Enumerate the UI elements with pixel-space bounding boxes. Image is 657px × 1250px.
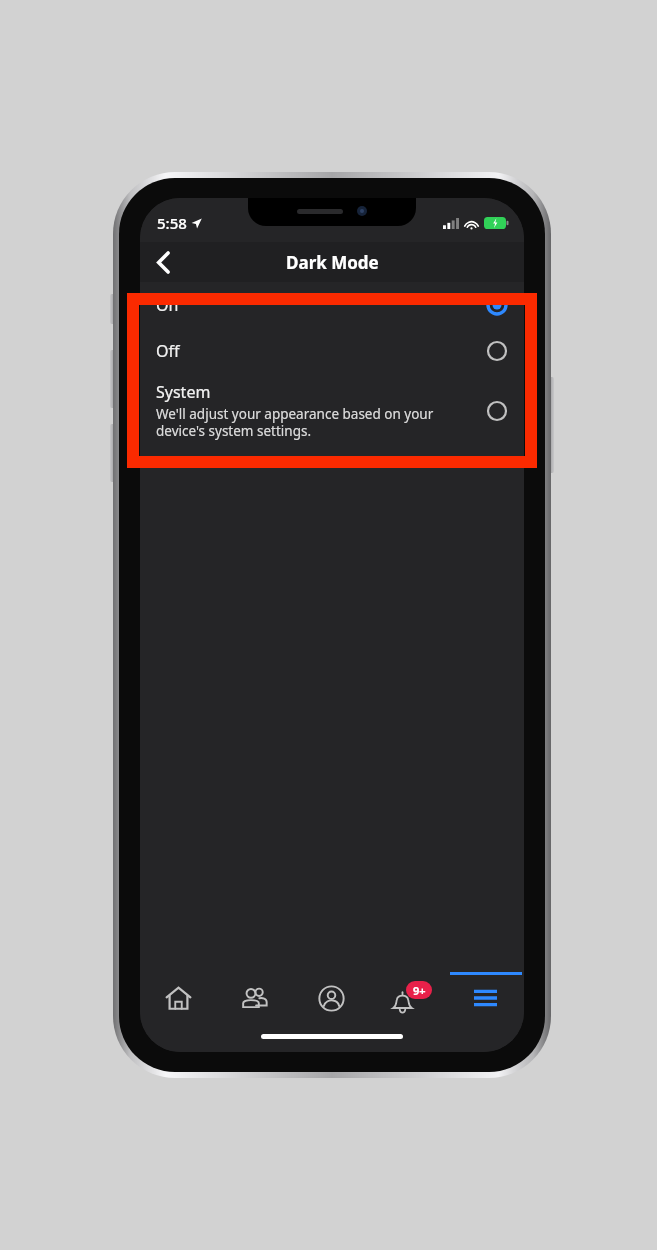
button[interactable]: On bbox=[140, 282, 524, 328]
button[interactable]: System bbox=[140, 374, 524, 447]
staticText: Dark Mode bbox=[286, 251, 379, 274]
button[interactable]: Off bbox=[140, 328, 524, 374]
button[interactable]: Friends bbox=[216, 970, 293, 1026]
button[interactable]: Back bbox=[140, 242, 186, 282]
button[interactable]: Home bbox=[140, 970, 216, 1026]
staticText: 9+ bbox=[413, 983, 426, 998]
staticText: System bbox=[156, 381, 211, 403]
button[interactable]: Profile bbox=[293, 970, 370, 1026]
staticText: On bbox=[156, 294, 179, 316]
button[interactable]: Notifications bbox=[370, 970, 447, 1026]
staticText: Off bbox=[156, 340, 180, 362]
button[interactable]: Menu bbox=[447, 970, 524, 1026]
staticText: We'll adjust your appearance based on yo… bbox=[156, 405, 474, 440]
staticText: 5:58 bbox=[157, 213, 187, 233]
